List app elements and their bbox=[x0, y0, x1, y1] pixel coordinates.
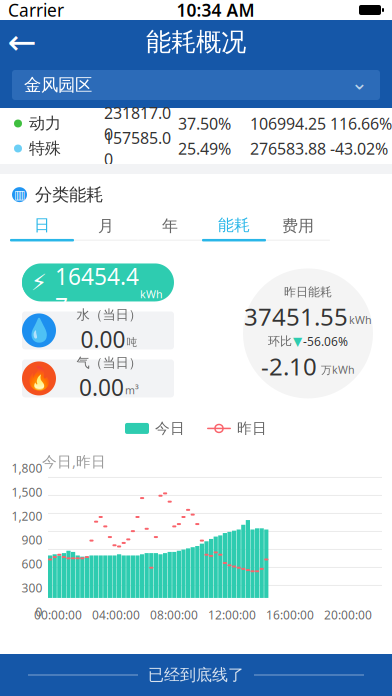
staticText: 600 bbox=[21, 556, 42, 572]
staticText: Carrier bbox=[8, 0, 64, 21]
staticText: 157585.00 bbox=[104, 127, 171, 170]
staticText: 能耗 bbox=[218, 215, 250, 235]
staticText: 276583.88 bbox=[250, 138, 326, 159]
button[interactable]: 日 bbox=[10, 215, 74, 241]
staticText: 月 bbox=[98, 216, 114, 236]
staticText: 特殊 bbox=[29, 139, 61, 158]
staticText: 年 bbox=[162, 216, 178, 236]
staticText: 昨日能耗 bbox=[284, 285, 332, 299]
staticText: 昨日 bbox=[237, 419, 267, 437]
staticText: 25.49% bbox=[178, 138, 231, 159]
staticText: 0 bbox=[35, 604, 42, 620]
button[interactable]: 月 bbox=[74, 216, 138, 241]
staticText: 16:00:00 bbox=[266, 607, 314, 623]
staticText: -43.02% bbox=[330, 138, 388, 159]
staticText: kWh bbox=[140, 287, 163, 301]
staticText: 10:34 AM bbox=[176, 0, 254, 21]
staticText: 16454.47 bbox=[55, 261, 139, 321]
staticText: -2.10 bbox=[261, 350, 317, 382]
staticText: 环比 bbox=[268, 334, 292, 349]
staticText: 0.00 bbox=[80, 324, 125, 354]
staticText: 106994.25 bbox=[250, 113, 326, 134]
staticText: 300 bbox=[21, 580, 42, 596]
staticText: 💧 bbox=[25, 317, 53, 343]
staticText: ← bbox=[7, 22, 36, 62]
staticText: ⌄ bbox=[351, 71, 368, 94]
staticText: 37451.55 bbox=[244, 300, 348, 332]
staticText: ▼ bbox=[293, 334, 302, 348]
staticText: 费用 bbox=[282, 216, 314, 236]
button[interactable]: 能耗 bbox=[202, 215, 266, 241]
staticText: 金风园区 bbox=[24, 74, 92, 96]
staticText: 12:00:00 bbox=[208, 607, 256, 623]
staticText: 🔥 bbox=[25, 365, 53, 391]
staticText: ▥ bbox=[14, 188, 25, 201]
staticText: 1,800 bbox=[11, 460, 42, 476]
staticText: 900 bbox=[21, 532, 42, 548]
staticText: 231817.00 bbox=[104, 102, 171, 145]
staticText: kWh bbox=[349, 313, 372, 327]
button[interactable]: 气（当日） bbox=[22, 359, 174, 397]
staticText: 能耗概况 bbox=[146, 26, 246, 57]
staticText: 04:00:00 bbox=[92, 607, 140, 623]
staticText: 已经到底线了 bbox=[148, 665, 244, 685]
staticText: 分类能耗 bbox=[35, 184, 103, 205]
staticText: 今日 bbox=[155, 419, 185, 437]
staticText: 今日,昨日 bbox=[42, 451, 106, 471]
staticText: 气（当日） bbox=[76, 355, 141, 371]
staticText: 动力 bbox=[29, 114, 61, 133]
button[interactable]: 费用 bbox=[266, 216, 330, 241]
staticText: -56.06% bbox=[303, 333, 348, 349]
staticText: ⚡︎ bbox=[31, 270, 47, 295]
staticText: m³ bbox=[125, 383, 139, 397]
staticText: 37.50% bbox=[178, 113, 231, 134]
staticText: 20:00:00 bbox=[324, 607, 372, 623]
staticText: 08:00:00 bbox=[150, 607, 198, 623]
staticText: 00:00:00 bbox=[34, 607, 82, 623]
button[interactable]: 水（当日） bbox=[22, 311, 174, 349]
staticText: 吨 bbox=[126, 336, 137, 349]
button[interactable]: 金风园区 bbox=[12, 70, 380, 100]
staticText: 1,200 bbox=[11, 508, 42, 524]
staticText: 1,500 bbox=[11, 484, 42, 500]
staticText: 万kWh bbox=[321, 363, 355, 377]
staticText: 116.66% bbox=[330, 113, 392, 134]
button[interactable]: Back bbox=[0, 20, 44, 64]
staticText: 0.00 bbox=[79, 372, 124, 402]
button[interactable]: 年 bbox=[138, 216, 202, 241]
button[interactable]: 电（当日） bbox=[22, 263, 174, 301]
staticText: 水（当日） bbox=[76, 307, 141, 323]
staticText: 日 bbox=[34, 215, 50, 235]
